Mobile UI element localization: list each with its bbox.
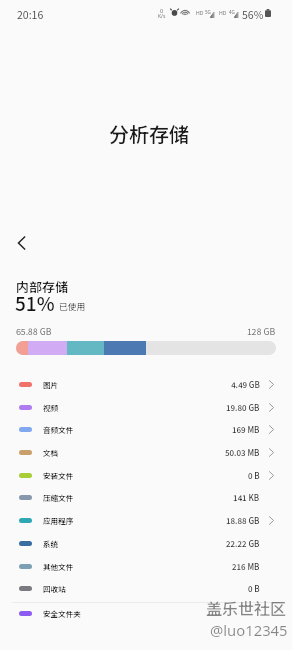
staticText: 50.03 MB xyxy=(225,447,260,459)
staticText: HD xyxy=(219,10,227,17)
button[interactable]: 回收站 xyxy=(0,577,292,600)
button[interactable]: 视频 xyxy=(0,396,292,419)
staticText: 回收站 xyxy=(43,583,66,594)
button[interactable]: 音频文件 xyxy=(0,418,292,441)
staticText: 其他文件 xyxy=(43,561,74,572)
staticText: 169 MB xyxy=(232,424,260,436)
staticText: 图片 xyxy=(43,379,59,390)
staticText: HD xyxy=(196,10,204,17)
staticText: 56% xyxy=(242,7,264,22)
staticText: 内部存储 xyxy=(16,277,69,296)
button[interactable]: 应用程序 xyxy=(0,509,292,532)
staticText: 18.88 GB xyxy=(226,515,260,527)
staticText: 视频 xyxy=(43,402,59,413)
staticText: 22.22 GB xyxy=(226,538,260,550)
staticText: 0 B xyxy=(248,583,260,595)
staticText: 141 KB xyxy=(233,492,260,504)
button[interactable]: 文档 xyxy=(0,441,292,464)
staticText: 20:16 xyxy=(17,7,44,22)
button[interactable]: 图片 xyxy=(0,373,292,396)
staticText: 0 B xyxy=(248,470,260,482)
button[interactable]: 安装文件 xyxy=(0,464,292,487)
staticText: 盖乐世社区 xyxy=(206,596,287,619)
staticText: 128 GB xyxy=(247,325,276,338)
staticText: 4.49 GB xyxy=(231,379,260,391)
other: Wi-Fi xyxy=(181,9,190,17)
button[interactable]: 压缩文件 xyxy=(0,486,292,509)
staticText: 音频文件 xyxy=(43,424,74,435)
button[interactable]: 其他文件 xyxy=(0,555,292,578)
other: Alarm xyxy=(171,9,178,16)
staticText: 19.80 GB xyxy=(226,402,260,414)
staticText: 应用程序 xyxy=(43,515,74,526)
staticText: K/s xyxy=(158,13,166,20)
staticText: 压缩文件 xyxy=(43,492,74,503)
other: Battery xyxy=(265,9,271,17)
staticText: 4G xyxy=(229,9,235,15)
staticText: 分析存储 xyxy=(109,119,189,145)
staticText: 安全文件夹 xyxy=(43,608,81,619)
staticText: 5G xyxy=(205,9,211,15)
button[interactable]: 安全文件夹 xyxy=(0,602,292,625)
staticText: 65.88 GB xyxy=(16,325,52,338)
staticText: 文档 xyxy=(43,447,59,458)
staticText: 0 xyxy=(160,7,164,14)
button[interactable]: Back xyxy=(4,225,40,261)
staticText: 已使用 xyxy=(59,300,86,313)
staticText: 安装文件 xyxy=(43,470,74,481)
staticText: 系统 xyxy=(43,538,59,549)
staticText: @luo12345 xyxy=(210,620,288,640)
staticText: 216 MB xyxy=(232,561,260,573)
button[interactable]: 系统 xyxy=(0,532,292,555)
staticText: 51% xyxy=(15,289,55,317)
